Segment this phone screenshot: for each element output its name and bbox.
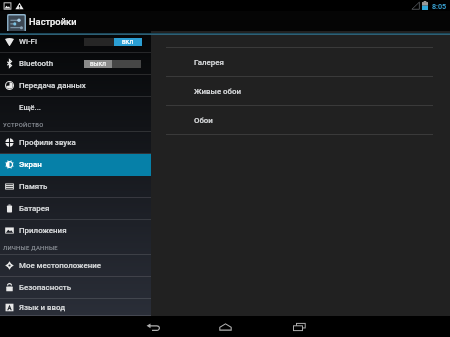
staticText: Живые обои bbox=[194, 87, 242, 96]
button[interactable]: ВЫКЛ bbox=[84, 60, 141, 68]
staticText: Bluetooth bbox=[19, 59, 54, 68]
staticText: Ещё... bbox=[19, 103, 42, 112]
staticText: ВКЛ bbox=[122, 39, 134, 46]
staticText: Профили звука bbox=[19, 138, 76, 147]
button[interactable]: Wi-Fi bbox=[0, 31, 151, 53]
button[interactable]: Живые обои bbox=[151, 77, 450, 105]
staticText: Память bbox=[19, 182, 48, 191]
button[interactable]: ЛИЧНЫЕ ДАННЫЕ bbox=[0, 242, 151, 255]
button[interactable]: Профили звука bbox=[0, 132, 151, 154]
staticText: ЛИЧНЫЕ ДАННЫЕ bbox=[3, 245, 58, 252]
staticText: Язык и ввод bbox=[19, 303, 66, 312]
button[interactable]: Передача данных bbox=[0, 75, 151, 97]
button[interactable]: Приложения bbox=[0, 220, 151, 242]
staticText: ВЫКЛ bbox=[90, 61, 106, 68]
staticText: Приложения bbox=[19, 226, 67, 235]
staticText: Wi-Fi bbox=[19, 37, 37, 46]
button[interactable]: Back bbox=[143, 316, 163, 337]
button[interactable]: Home bbox=[215, 316, 235, 337]
button[interactable]: Язык и ввод bbox=[0, 299, 151, 316]
staticText: Мое местоположение bbox=[19, 261, 101, 270]
staticText: УСТРОЙСТВО bbox=[3, 122, 44, 129]
staticText: Батарея bbox=[19, 204, 50, 213]
staticText: Безопасность bbox=[19, 283, 72, 292]
button[interactable]: Настройки bbox=[0, 11, 450, 31]
button[interactable]: Безопасность bbox=[0, 277, 151, 299]
button[interactable]: ВКЛ bbox=[84, 38, 141, 46]
staticText: Передача данных bbox=[19, 81, 86, 90]
button[interactable]: Память bbox=[0, 176, 151, 198]
button[interactable]: Галерея bbox=[151, 48, 450, 76]
button[interactable]: Обои bbox=[151, 106, 450, 134]
button[interactable]: Мое местоположение bbox=[0, 255, 151, 277]
staticText: Экран bbox=[19, 160, 42, 169]
button[interactable]: Батарея bbox=[0, 198, 151, 220]
button[interactable]: Ещё... bbox=[0, 97, 151, 119]
button[interactable]: УСТРОЙСТВО bbox=[0, 119, 151, 132]
button[interactable]: Bluetooth bbox=[0, 53, 151, 75]
button[interactable]: Экран bbox=[0, 154, 151, 176]
staticText: Обои bbox=[194, 116, 213, 125]
staticText: Настройки bbox=[29, 16, 77, 27]
button[interactable]: Recent apps bbox=[289, 316, 309, 337]
staticText: Галерея bbox=[194, 58, 224, 67]
staticText: 8:05 bbox=[432, 2, 447, 10]
